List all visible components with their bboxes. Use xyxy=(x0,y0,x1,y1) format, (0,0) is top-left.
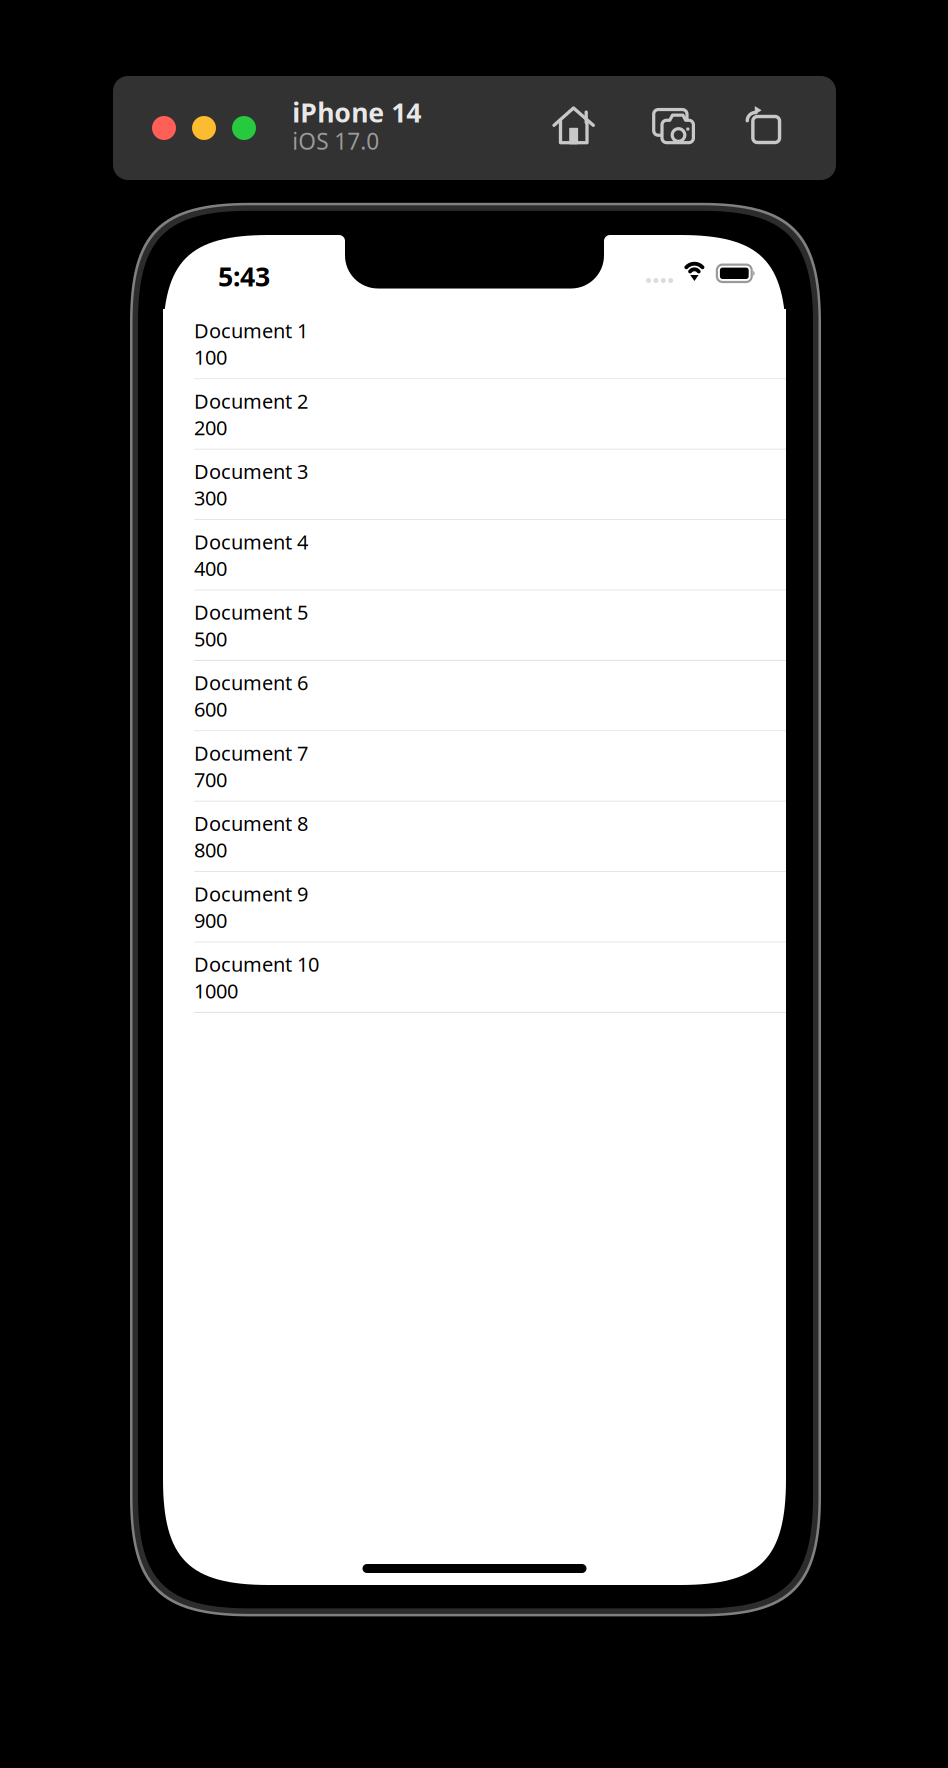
staticText: 200 xyxy=(194,414,227,441)
button[interactable]: Document 3 xyxy=(163,450,786,520)
button[interactable]: Document 6 xyxy=(163,661,786,731)
staticText: 5:43 xyxy=(218,258,270,294)
staticText: Document 9 xyxy=(194,880,308,907)
staticText: 300 xyxy=(194,485,227,511)
button[interactable]: Document 2 xyxy=(163,379,786,450)
staticText: Document 6 xyxy=(194,669,308,696)
staticText: Document 4 xyxy=(194,528,308,555)
button[interactable]: Document 5 xyxy=(163,591,786,661)
staticText: Document 2 xyxy=(194,388,308,414)
button[interactable]: Document 9 xyxy=(163,872,786,943)
staticText: 800 xyxy=(194,837,227,863)
staticText: Document 7 xyxy=(194,740,308,766)
staticText: 400 xyxy=(194,555,227,582)
staticText: Document 3 xyxy=(194,458,308,485)
button[interactable]: Screenshot xyxy=(652,108,695,144)
staticText: 700 xyxy=(194,766,227,793)
staticText: iPhone 14 xyxy=(292,94,421,130)
staticText: Document 1 xyxy=(194,317,308,344)
staticText: Document 10 xyxy=(194,951,319,977)
button[interactable]: Document 1 xyxy=(163,309,786,379)
staticText: Document 5 xyxy=(194,599,308,625)
staticText: 1000 xyxy=(194,977,238,1004)
button[interactable]: Document 10 xyxy=(163,943,786,1013)
staticText: 100 xyxy=(194,344,227,370)
staticText: 600 xyxy=(194,696,227,722)
staticText: iOS 17.0 xyxy=(292,126,379,156)
button[interactable]: Document 4 xyxy=(163,520,786,591)
button[interactable]: Document 7 xyxy=(163,731,786,802)
staticText: 500 xyxy=(194,625,227,652)
staticText: Document 8 xyxy=(194,810,308,837)
button[interactable]: Rotate xyxy=(745,106,780,143)
staticText: 900 xyxy=(194,907,227,934)
button[interactable]: Document 8 xyxy=(163,802,786,872)
button[interactable]: Home xyxy=(552,106,595,144)
